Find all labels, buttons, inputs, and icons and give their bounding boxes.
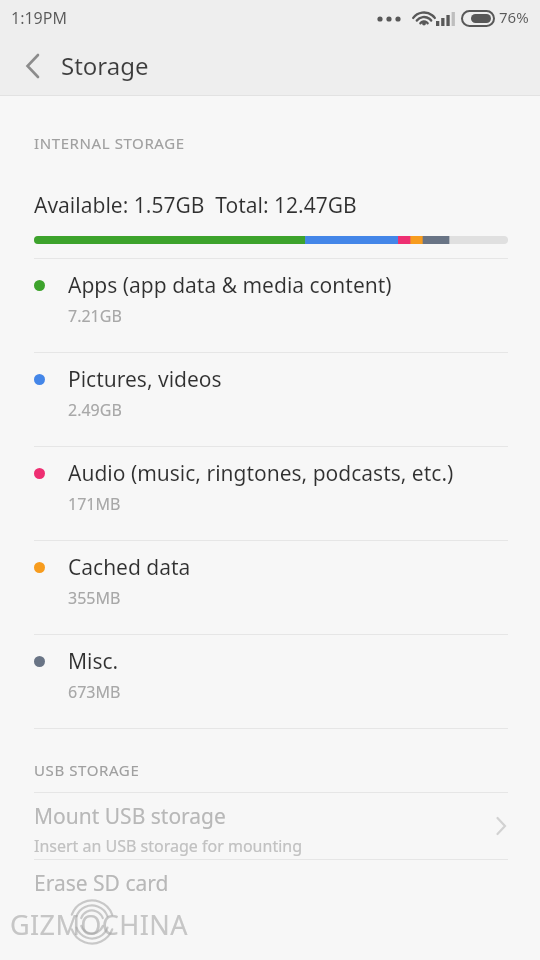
staticText: Apps (app data & media content) xyxy=(68,271,392,300)
button[interactable]: Back xyxy=(8,42,56,90)
button[interactable]: Misc. xyxy=(0,635,540,728)
staticText: 171MB xyxy=(68,493,121,515)
staticText: 7.21GB xyxy=(68,305,122,327)
staticText: Cached data xyxy=(68,553,191,582)
staticText: 673MB xyxy=(68,681,121,703)
staticText: 1:19PM xyxy=(11,7,67,29)
button[interactable]: Cached data xyxy=(0,541,540,634)
button[interactable]: Mount USB storage xyxy=(0,793,540,859)
staticText: 2.49GB xyxy=(68,399,122,421)
staticText: Storage xyxy=(61,49,149,82)
staticText: Insert an USB storage for mounting xyxy=(34,835,303,857)
staticText: 76% xyxy=(499,7,529,27)
staticText: Pictures, videos xyxy=(68,365,222,394)
staticText: Audio (music, ringtones, podcasts, etc.) xyxy=(68,459,454,488)
staticText: Misc. xyxy=(68,647,119,676)
button[interactable]: Pictures, videos xyxy=(0,353,540,446)
staticText: INTERNAL STORAGE xyxy=(34,133,185,153)
staticText: GIZMOCHINA xyxy=(10,906,188,943)
staticText: Mount USB storage xyxy=(34,802,226,831)
staticText: Available: 1.57GB Total: 12.47GB xyxy=(34,191,357,220)
staticText: Erase SD card xyxy=(34,869,169,898)
button[interactable]: Erase SD card xyxy=(0,860,540,900)
staticText: 355MB xyxy=(68,587,121,609)
button[interactable]: Audio (music, ringtones, podcasts, etc.) xyxy=(0,447,540,540)
staticText: USB STORAGE xyxy=(34,760,140,780)
button[interactable]: Apps (app data & media content) xyxy=(0,259,540,352)
